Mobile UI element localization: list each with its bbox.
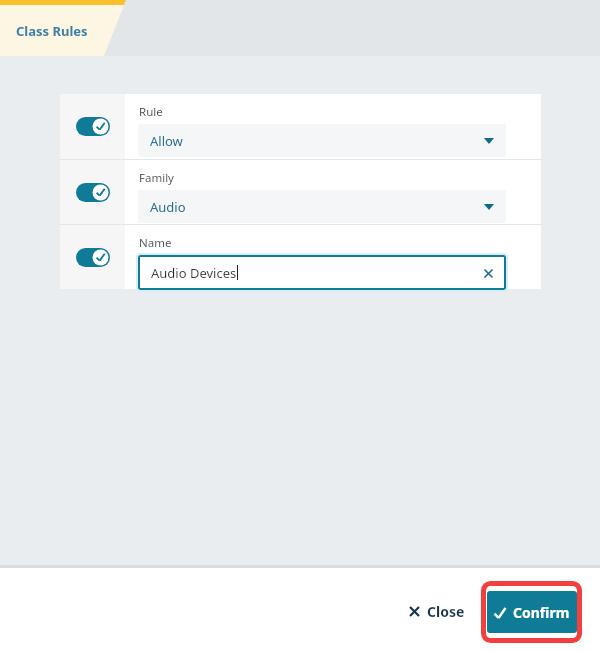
button[interactable]: Clear text [480,265,496,281]
staticText: Confirm [513,603,570,622]
button[interactable]: Allow [138,124,506,157]
button[interactable]: Audio Devices [138,255,506,290]
staticText: Class Rules [16,22,88,40]
button[interactable]: Confirm [487,591,577,633]
staticText: Close [427,602,465,621]
button[interactable]: Close [397,591,477,631]
staticText: Rule [139,104,163,120]
staticText: Family [139,170,174,186]
button[interactable]: Toggle Name [60,225,125,289]
button[interactable]: Audio [138,190,506,223]
button[interactable]: Toggle Family [60,160,125,224]
button[interactable]: Toggle Rule [60,94,125,159]
staticText: Audio Devices [151,264,237,282]
staticText: Name [139,235,172,251]
staticText: Allow [150,132,183,150]
staticText: Audio [150,198,186,216]
